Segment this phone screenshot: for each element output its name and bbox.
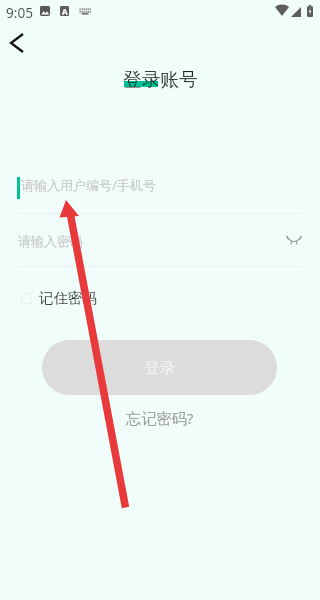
staticText: 请输入密码 <box>18 233 302 249</box>
staticText: 登录账号 <box>123 68 198 92</box>
staticText: 记住密码 <box>39 289 97 307</box>
button[interactable]: Show password <box>282 228 306 252</box>
button[interactable]: 请输入用户编号/手机号 <box>21 170 302 200</box>
button[interactable]: 登录 <box>42 340 277 395</box>
staticText: 登录 <box>144 358 176 378</box>
button[interactable]: Back <box>0 28 34 58</box>
staticText: 忘记密码? <box>126 408 194 429</box>
button[interactable]: 记住密码 <box>17 285 101 311</box>
staticText: A <box>62 6 68 16</box>
button[interactable]: 请输入密码 <box>18 226 302 256</box>
button[interactable]: 忘记密码? <box>118 405 202 432</box>
staticText: 请输入用户编号/手机号 <box>21 176 156 194</box>
staticText: 9:05 <box>6 3 33 22</box>
